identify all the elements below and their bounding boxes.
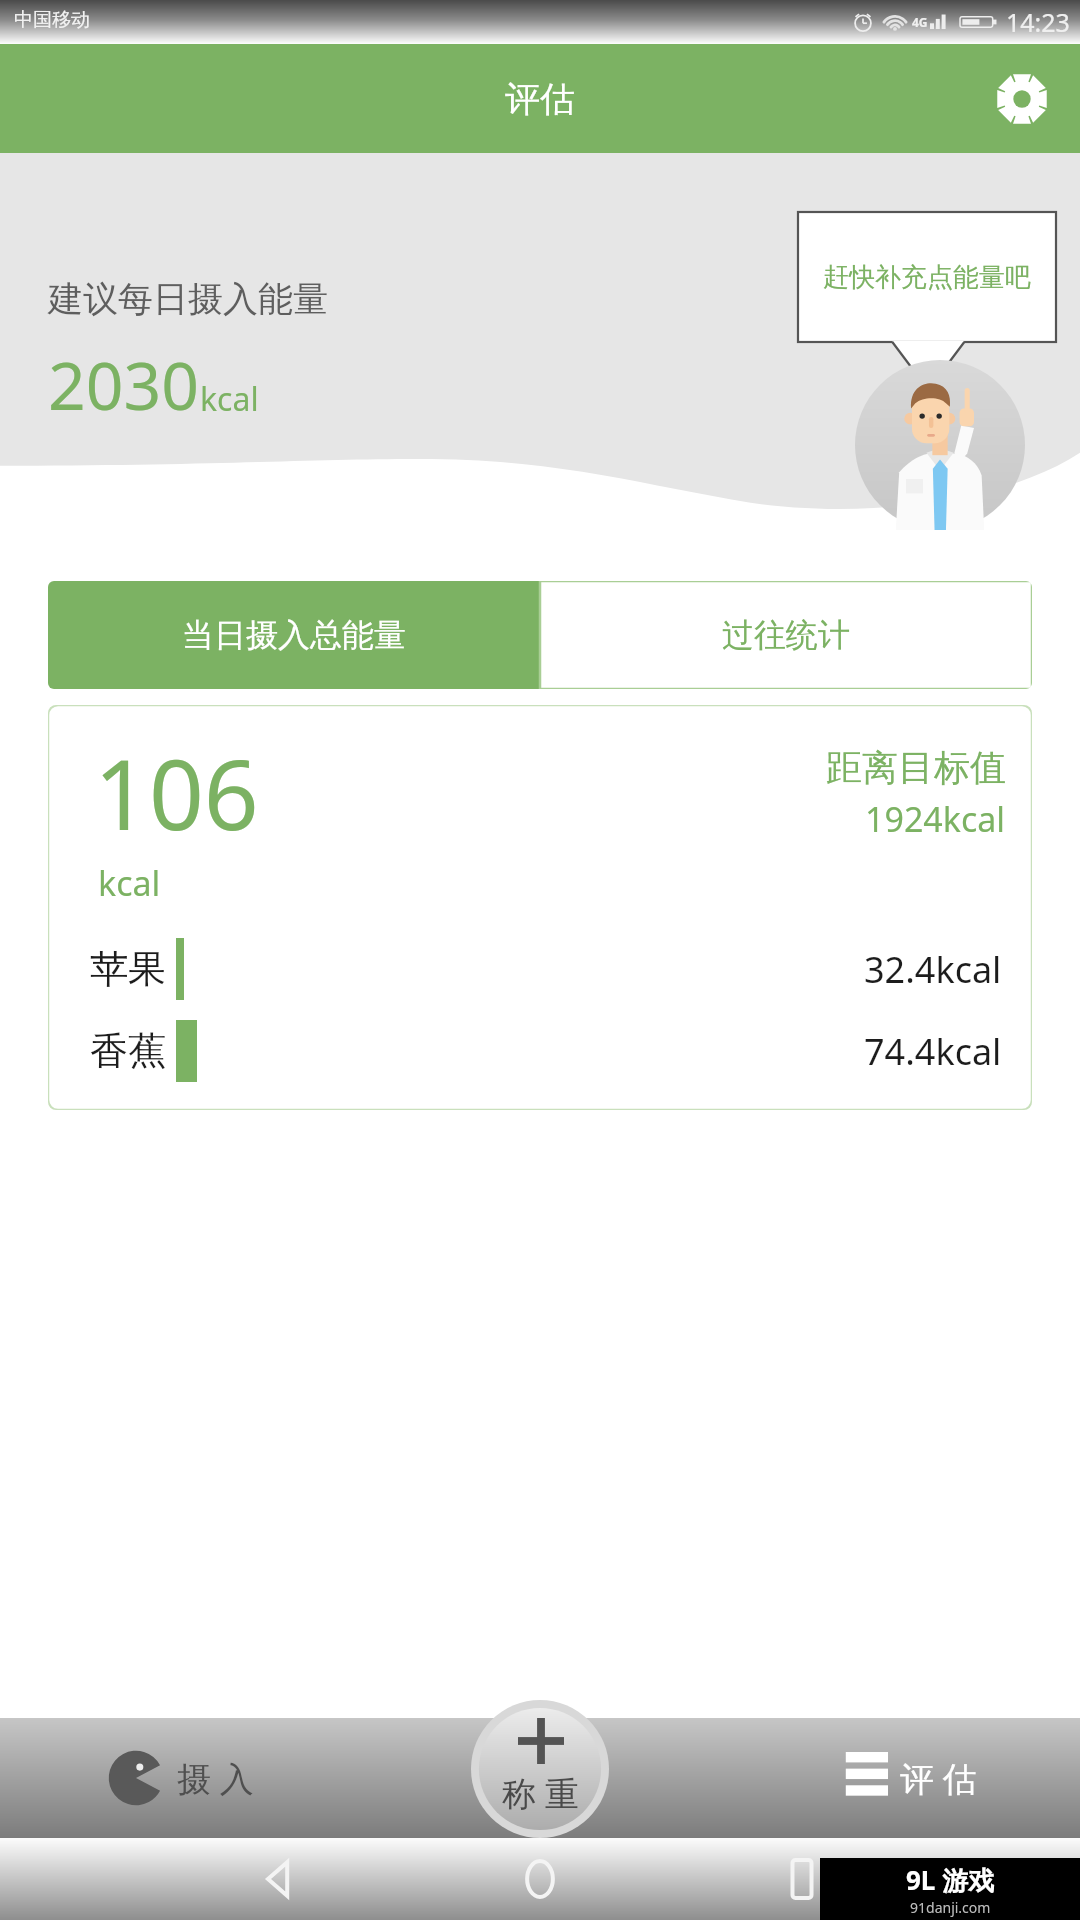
staticText: 中国移动 [14, 8, 90, 32]
staticText: 4G [912, 14, 928, 30]
button[interactable]: Home [512, 1851, 568, 1907]
staticText: 1924kcal [865, 796, 1006, 842]
button[interactable]: 香蕉 [48, 1010, 1032, 1092]
staticText: 香蕉 [90, 1027, 166, 1075]
staticText: kcal [98, 860, 161, 906]
staticText: 赶快补充点能量吧 [798, 261, 1056, 294]
staticText: 评估 [505, 77, 575, 121]
staticText: kcal [200, 377, 259, 421]
button[interactable]: Recents [774, 1851, 830, 1907]
staticText: 过往统计 [722, 615, 850, 655]
staticText: 14:23 [1006, 5, 1070, 39]
staticText: 建议每日摄入能量 [48, 277, 328, 321]
staticText: 距离目标值 [826, 745, 1006, 790]
button[interactable]: 摄 入 [0, 1718, 360, 1838]
button[interactable]: 过往统计 [540, 581, 1032, 689]
staticText: 称 重 [502, 1770, 579, 1816]
staticText: 苹果 [90, 945, 166, 993]
staticText: 当日摄入总能量 [182, 615, 406, 655]
staticText: 2030 [48, 339, 200, 429]
staticText: 74.4kcal [864, 1027, 1002, 1076]
staticText: 摄 入 [177, 1755, 254, 1801]
staticText: 91danji.com [910, 1898, 991, 1917]
button[interactable]: 称 重 [447, 1700, 633, 1838]
button[interactable]: Back [250, 1849, 310, 1909]
button[interactable]: 评 估 [720, 1718, 1080, 1838]
button[interactable]: 当日摄入总能量 [48, 581, 540, 689]
button[interactable]: Settings [994, 71, 1050, 127]
staticText: 9L 游戏 [906, 1862, 995, 1898]
staticText: 评 估 [900, 1755, 977, 1801]
button[interactable]: 苹果 [48, 928, 1032, 1010]
staticText: 106 [94, 727, 259, 858]
staticText: 32.4kcal [864, 945, 1002, 994]
